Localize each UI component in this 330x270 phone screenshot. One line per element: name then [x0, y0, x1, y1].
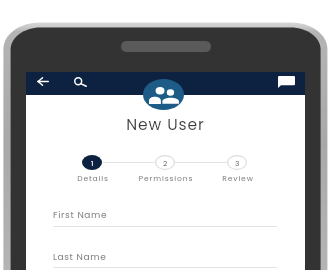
staticText: Review — [206, 173, 270, 184]
staticText: Last Name — [53, 251, 107, 264]
button[interactable]: 1 — [60, 153, 124, 177]
staticText: First Name — [53, 209, 108, 222]
button[interactable]: 2 — [133, 153, 197, 177]
button[interactable]: Last Name — [53, 245, 277, 270]
button[interactable]: Back — [31, 69, 55, 93]
staticText: Permissions — [134, 173, 198, 184]
staticText: 1 — [91, 158, 94, 168]
staticText: New User — [26, 114, 305, 136]
button[interactable]: Messages — [274, 70, 298, 94]
button[interactable]: First Name — [53, 203, 277, 232]
button[interactable]: 3 — [205, 153, 269, 177]
staticText: 2 — [163, 158, 168, 168]
staticText: 3 — [235, 158, 240, 168]
staticText: Details — [61, 173, 125, 184]
button[interactable]: Search — [68, 70, 92, 94]
